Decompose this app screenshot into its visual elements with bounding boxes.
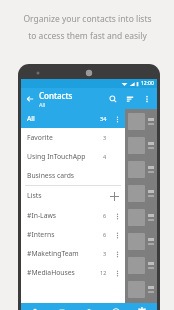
staticText: 3 xyxy=(103,134,107,141)
staticText: 12 xyxy=(100,269,107,276)
button[interactable]: #MediaHouses xyxy=(21,263,125,282)
staticText: Business cards xyxy=(27,171,75,180)
button[interactable]: #Interns xyxy=(21,225,125,244)
staticText: 6 xyxy=(103,231,107,238)
button[interactable]: History xyxy=(104,303,128,310)
staticText: Lists xyxy=(27,191,42,201)
button[interactable]: Back xyxy=(21,90,39,108)
button[interactable]: More options xyxy=(138,90,155,107)
button[interactable]: #In-Laws options xyxy=(112,211,122,221)
staticText: 34 xyxy=(100,115,107,122)
button[interactable]: All options xyxy=(112,114,122,124)
button[interactable]: #In-Laws xyxy=(21,206,125,225)
button[interactable]: #MaketingTeam options xyxy=(112,249,122,259)
staticText: Favorite xyxy=(27,133,53,142)
staticText: Contacts xyxy=(39,90,73,101)
staticText: to access them fast and easily xyxy=(28,30,147,42)
staticText: Using InTouchApp xyxy=(27,152,86,161)
button[interactable]: Lists xyxy=(21,186,125,206)
staticText: 6 xyxy=(103,212,107,219)
button[interactable]: #MediaHouses options xyxy=(112,268,122,278)
button[interactable]: Search xyxy=(104,90,121,107)
button[interactable]: Business cards xyxy=(50,303,74,310)
button[interactable]: Business cards xyxy=(21,166,125,185)
button[interactable]: Using InTouchApp xyxy=(21,147,125,166)
staticText: #In-Laws xyxy=(27,211,57,220)
button[interactable]: Groups xyxy=(77,303,101,310)
button[interactable]: Contacts xyxy=(24,303,48,310)
button[interactable]: Settings xyxy=(130,303,154,310)
staticText: All xyxy=(39,101,46,108)
staticText: #Interns xyxy=(27,230,55,239)
staticText: 12:00 xyxy=(141,80,154,87)
button[interactable]: Sort xyxy=(121,90,138,107)
button[interactable]: All xyxy=(21,109,125,128)
button[interactable]: #Interns options xyxy=(112,230,122,240)
staticText: Organize your contacts into lists xyxy=(23,13,152,25)
staticText: #MaketingTeam xyxy=(27,249,79,258)
staticText: #MediaHouses xyxy=(27,268,75,277)
staticText: 4 xyxy=(103,153,107,160)
staticText: 3 xyxy=(103,250,107,257)
button[interactable]: #MaketingTeam xyxy=(21,244,125,263)
button[interactable]: Favorite xyxy=(21,128,125,147)
staticText: All xyxy=(27,114,35,123)
